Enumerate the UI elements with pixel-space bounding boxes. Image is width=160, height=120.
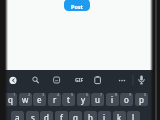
staticText: GIF	[75, 77, 84, 84]
button[interactable]: o	[120, 93, 133, 106]
button[interactable]: u	[91, 93, 104, 106]
button[interactable]: f	[55, 111, 68, 120]
staticText: 7	[100, 92, 103, 97]
staticText: y	[81, 94, 86, 105]
staticText: l	[132, 112, 135, 120]
button[interactable]	[5, 72, 21, 88]
staticText: u	[95, 94, 100, 105]
staticText: i	[111, 94, 114, 105]
button[interactable]: p	[135, 93, 148, 106]
button[interactable]: h	[84, 111, 97, 120]
button[interactable]	[134, 72, 149, 87]
staticText: t	[67, 94, 70, 105]
staticText: h	[88, 112, 93, 120]
staticText: Post	[71, 3, 84, 10]
button[interactable]: w	[19, 93, 32, 106]
staticText: d	[44, 112, 49, 120]
staticText: k	[117, 112, 122, 120]
staticText: 3	[42, 92, 45, 97]
button[interactable]: j	[98, 111, 111, 120]
staticText: 2	[28, 92, 31, 97]
button[interactable]: Post	[64, 0, 90, 11]
button[interactable]: q	[4, 93, 17, 106]
staticText: 5	[71, 92, 74, 97]
staticText: 8	[115, 92, 118, 97]
button[interactable]: k	[113, 111, 126, 120]
button[interactable]	[28, 72, 44, 88]
button[interactable]: g	[69, 111, 82, 120]
button[interactable]: t	[62, 93, 75, 106]
button[interactable]: e	[33, 93, 46, 106]
staticText: e	[37, 94, 42, 105]
staticText: 9	[129, 92, 132, 97]
staticText: o	[124, 94, 129, 105]
staticText: 0	[144, 92, 147, 97]
staticText: f	[60, 112, 63, 120]
staticText: w	[22, 94, 29, 105]
staticText: 6	[86, 92, 89, 97]
button[interactable]: i	[106, 93, 119, 106]
button[interactable]: l	[127, 111, 140, 120]
button[interactable]: s	[26, 111, 39, 120]
button[interactable]	[49, 72, 65, 88]
staticText: j	[103, 112, 106, 120]
button[interactable]	[90, 72, 106, 88]
staticText: 4	[57, 92, 60, 97]
button[interactable]: GIF	[70, 73, 88, 87]
staticText: r	[53, 94, 57, 105]
button[interactable]: y	[77, 93, 90, 106]
button[interactable]: a	[11, 111, 24, 120]
staticText: q	[8, 94, 13, 105]
staticText: s	[31, 112, 35, 120]
button[interactable]	[115, 72, 131, 88]
staticText: 1	[13, 92, 16, 97]
staticText: g	[73, 112, 78, 120]
button[interactable]: d	[40, 111, 53, 120]
button[interactable]: r	[48, 93, 61, 106]
staticText: p	[139, 94, 144, 105]
staticText: a	[15, 112, 20, 120]
